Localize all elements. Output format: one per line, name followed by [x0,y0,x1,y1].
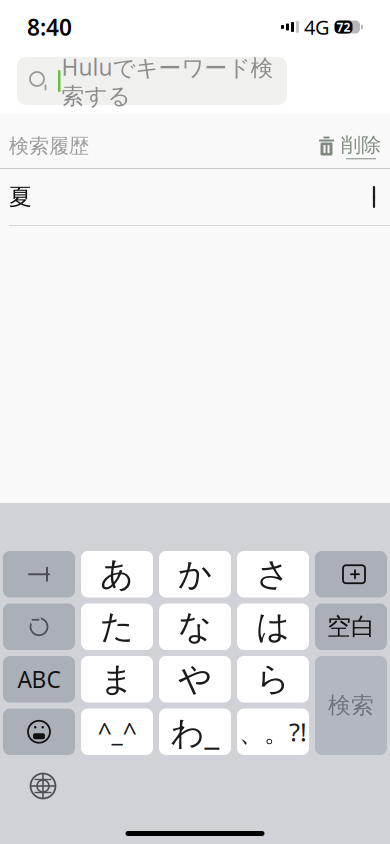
staticText: あ [100,554,134,595]
staticText: た [100,606,134,647]
button[interactable]: ABC [3,656,75,702]
staticText: さ [256,554,290,595]
staticText: 72 [336,19,350,35]
button[interactable]: Delete [315,551,387,597]
button[interactable]: や [159,656,231,702]
button[interactable]: さ [237,551,309,597]
button[interactable]: な [159,603,231,650]
staticText: や [178,659,212,700]
staticText: な [178,606,212,647]
button[interactable]: 空白 [315,603,387,650]
button[interactable]: 、。?! [237,708,309,755]
button[interactable]: ら [237,656,309,702]
staticText: わ_ [170,710,219,754]
button[interactable]: Undo [3,603,75,650]
staticText: 検索 [328,692,374,719]
staticText: 8:40 [27,12,72,42]
button[interactable]: Huluでキーワード検索する [17,57,287,105]
button[interactable]: 夏 [0,169,390,225]
staticText: 削除 [341,133,381,157]
staticText: 検索履歴 [9,134,89,158]
button[interactable]: ま [81,656,153,702]
button[interactable]: あ [81,551,153,597]
staticText: ^_^ [97,715,136,748]
button[interactable]: Next candidate [3,551,75,597]
button[interactable]: か [159,551,231,597]
button[interactable]: は [237,603,309,650]
staticText: か [178,554,212,595]
staticText: 夏 [9,183,32,211]
staticText: ABC [17,664,60,694]
staticText: は [256,606,290,647]
staticText: Huluでキーワード検索する [61,52,273,110]
button[interactable]: わ_ [159,708,231,755]
button[interactable]: 削除 [308,127,381,165]
button[interactable]: Emoji [3,708,75,755]
button[interactable]: Switch keyboard [20,765,66,807]
button[interactable]: 検索 [315,656,387,755]
button[interactable]: た [81,603,153,650]
staticText: 、。?! [239,715,307,749]
button[interactable]: ^_^ [81,708,153,755]
staticText: ま [100,659,134,700]
staticText: 4G [304,14,330,40]
staticText: ら [256,659,290,700]
staticText: 空白 [327,612,375,641]
